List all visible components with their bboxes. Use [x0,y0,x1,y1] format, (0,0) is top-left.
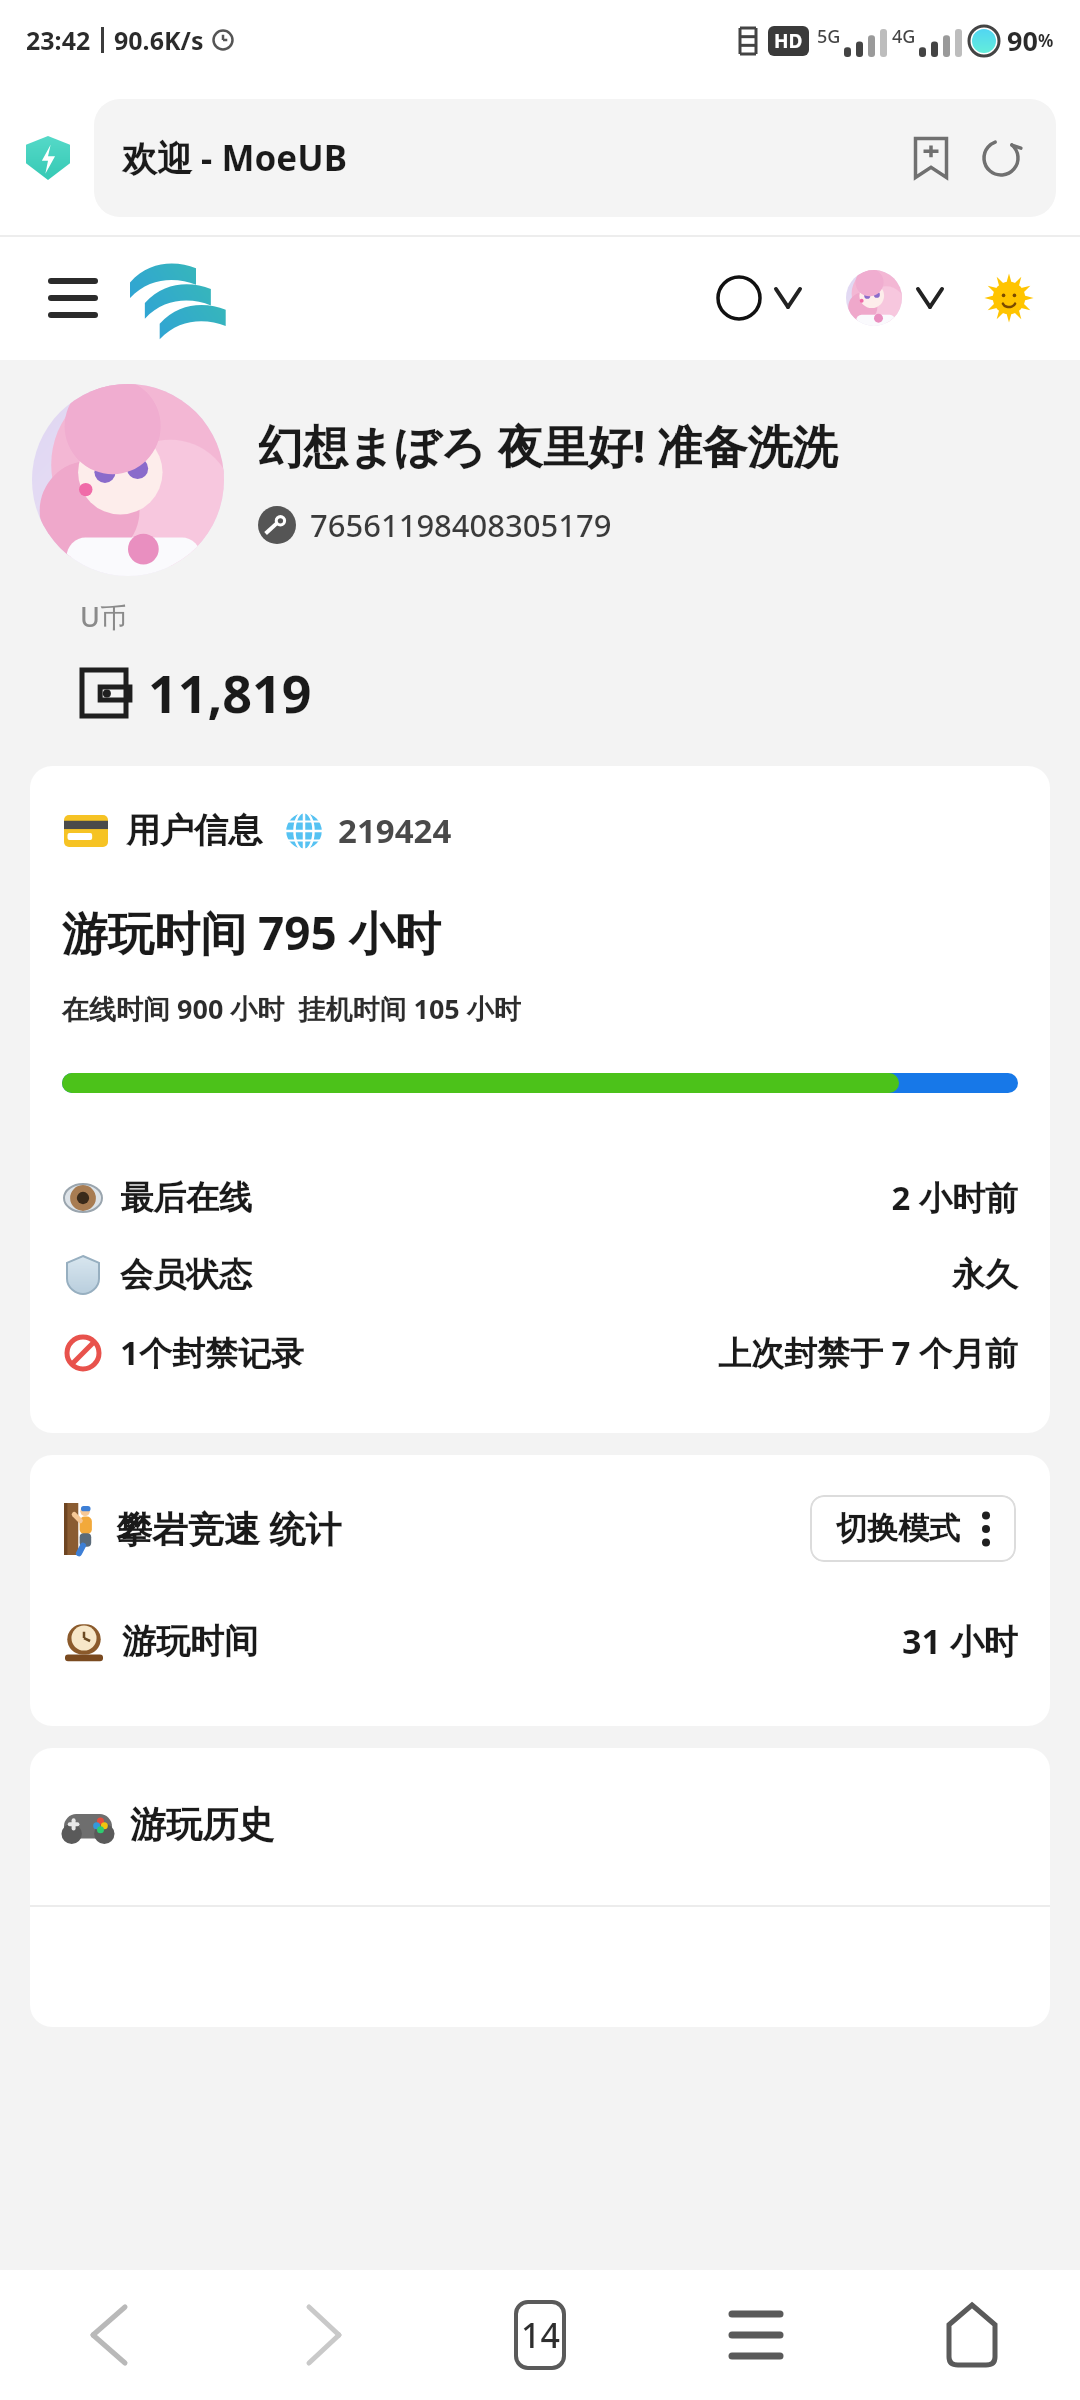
button[interactable]: 欢迎 - MoeUB [94,99,1056,217]
staticText: 31 小时 [902,1618,1018,1664]
button[interactable]: 1个封禁记录 [30,1326,1050,1379]
button[interactable] [840,264,948,332]
button[interactable]: 会员状态 [30,1250,1050,1300]
staticText: 幻想まぼろ 夜里好! 准备洗洗 [258,415,838,476]
staticText: 14 [521,2312,560,2358]
staticText: 攀岩竞速 统计 [116,1504,342,1553]
staticText: 90 [1007,22,1038,59]
staticText: 90.6K/s [114,23,204,57]
staticText: % [1038,29,1054,52]
staticText: 用户信息 [126,809,262,852]
staticText: 上次封禁于 7 个月前 [717,1330,1018,1375]
staticText: 永久 [952,1254,1018,1296]
button[interactable]: Reload [974,131,1028,185]
button[interactable]: Tabs: 14 [432,2270,648,2400]
button[interactable]: Add bookmark [904,131,958,185]
button[interactable]: Home [864,2270,1080,2400]
button[interactable]: Menu [648,2270,864,2400]
button[interactable]: Browser shield [24,134,72,182]
button[interactable]: 游玩时间 [30,1618,1050,1664]
staticText: 219424 [338,808,452,853]
staticText: 游玩历史 [130,1802,274,1847]
staticText: 11,819 [148,657,312,728]
button[interactable]: Light mode [982,271,1036,325]
staticText: 游玩时间 [122,1620,258,1663]
button[interactable]: 最后在线 [30,1171,1050,1224]
staticText: 23:42 [26,23,91,57]
staticText: 游玩时间 795 小时 [62,901,441,964]
button[interactable]: Forward [216,2270,432,2400]
staticText: 最后在线 [120,1177,252,1219]
staticText: 欢迎 - MoeUB [122,134,904,182]
staticText: 1个封禁记录 [120,1330,304,1375]
staticText: 2 小时前 [891,1175,1018,1220]
button[interactable] [710,269,806,327]
staticText: 在线时间 900 小时 挂机时间 105 小时 [62,990,521,1027]
button[interactable]: 切换模式 [810,1495,1016,1562]
staticText: HD [774,28,803,54]
button[interactable]: Profile avatar [32,384,224,576]
staticText: 76561198408305179 [310,504,612,546]
staticText: U币 [80,598,127,635]
staticText: 4G [892,24,916,49]
button[interactable]: 游玩历史 [30,1802,1050,1847]
staticText: 切换模式 [836,1509,960,1548]
button[interactable]: Back [0,2270,216,2400]
button[interactable]: Menu [44,269,102,327]
staticText: 5G [817,24,841,49]
staticText: 会员状态 [120,1254,252,1296]
button[interactable]: 用户信息 [30,808,1050,853]
